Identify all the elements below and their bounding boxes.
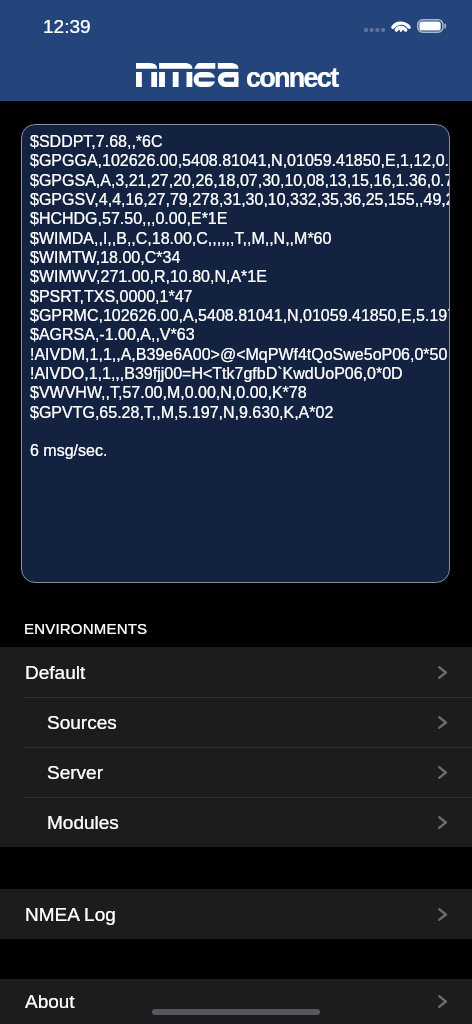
staticText: $WIMDA,,I,,B,,C,18.00,C,,,,,,T,,M,,N,,M*… xyxy=(30,230,332,248)
staticText: Server xyxy=(47,762,103,783)
staticText: $WIMWV,271.00,R,10.80,N,A*1E xyxy=(30,268,267,286)
staticText: !AIVDO,1,1,,,B39fjj00=H<Ttk7gfbD`KwdUoP0… xyxy=(30,365,403,383)
staticText: NMEA Log xyxy=(25,904,116,925)
staticText: $GPVTG,65.28,T,,M,5.197,N,9.630,K,A*02 xyxy=(30,404,334,422)
staticText: $PSRT,TXS,0000,1*47 xyxy=(30,288,193,306)
staticText: $HCHDG,57.50,,,0.00,E*1E xyxy=(30,210,228,228)
staticText: $GPGSA,A,3,21,27,20,26,18,07,30,10,08,13… xyxy=(30,172,450,190)
button[interactable]: NMEA Log xyxy=(0,889,472,939)
staticText: ENVIRONMENTS xyxy=(24,620,148,637)
button[interactable]: About xyxy=(0,979,472,1024)
staticText: Modules xyxy=(47,812,119,833)
staticText: $GPGSV,4,4,16,27,79,278,31,30,10,332,35,… xyxy=(30,191,450,209)
staticText: 12:39 xyxy=(43,16,91,37)
staticText: Default xyxy=(25,662,86,683)
staticText: $GPGGA,102626.00,5408.81041,N,01059.4185… xyxy=(30,152,450,170)
staticText: $VWVHW,,T,57.00,M,0.00,N,0.00,K*78 xyxy=(30,384,307,402)
button[interactable]: Sources xyxy=(0,697,472,747)
staticText: 6 msg/sec. xyxy=(30,442,108,460)
button[interactable]: Default xyxy=(0,647,472,697)
button[interactable]: Modules xyxy=(0,797,472,847)
staticText: !AIVDM,1,1,,A,B39e6A00>@<MqPWf4tQoSwe5oP… xyxy=(30,346,448,364)
staticText: Sources xyxy=(47,712,117,733)
staticText: $WIMTW,18.00,C*34 xyxy=(30,249,181,267)
staticText: $AGRSA,-1.00,A,,V*63 xyxy=(30,326,195,344)
staticText: About xyxy=(25,991,75,1012)
staticText: $GPRMC,102626.00,A,5408.81041,N,01059.41… xyxy=(30,307,450,325)
staticText: connect xyxy=(246,63,338,93)
staticText: $SDDPT,7.68,,*6C xyxy=(30,133,163,151)
button[interactable]: Server xyxy=(0,747,472,797)
